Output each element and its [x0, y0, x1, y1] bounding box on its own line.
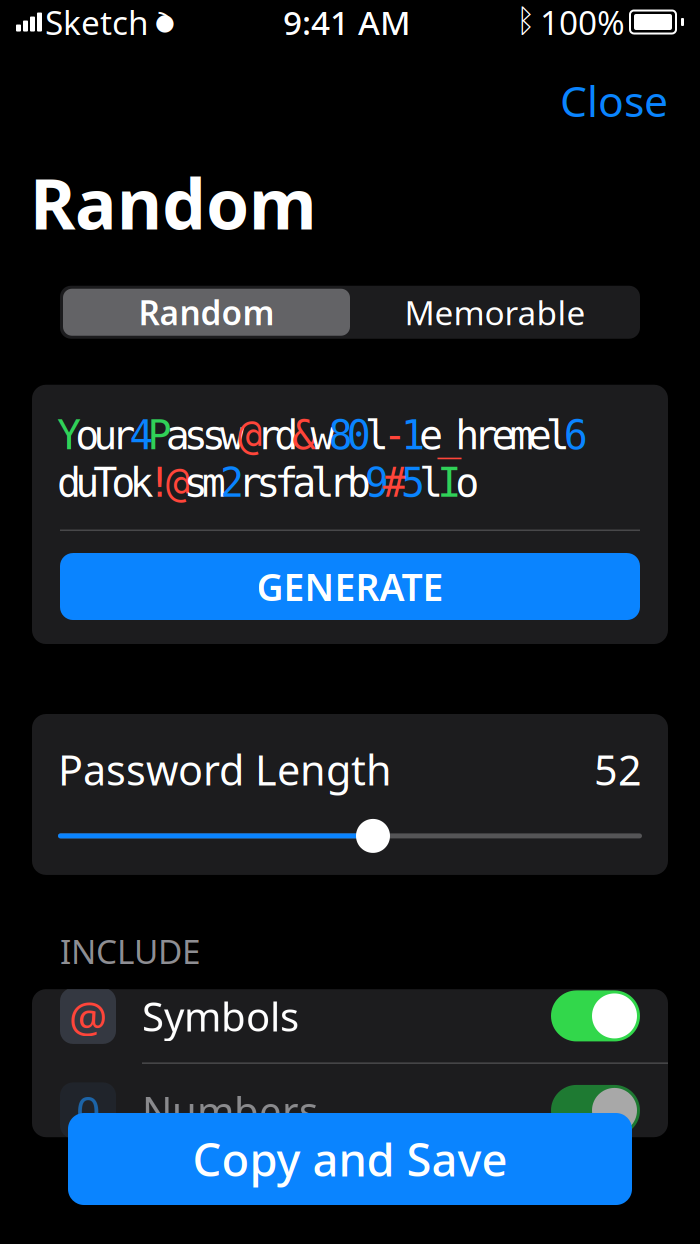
staticText: l	[365, 413, 389, 458]
staticText: 6	[564, 413, 588, 458]
staticText: GENERATE	[256, 562, 443, 611]
staticText: h	[455, 413, 479, 458]
staticText: Close	[560, 72, 668, 129]
staticText: r	[473, 413, 497, 458]
staticText: r	[256, 413, 280, 458]
staticText: 100%	[540, 0, 625, 44]
staticText: r	[238, 460, 262, 505]
staticText: Memorable	[404, 290, 585, 334]
staticText: a	[166, 413, 190, 458]
button[interactable]: Copy and Save	[0, 1113, 700, 1205]
button[interactable]: 0	[32, 1064, 668, 1157]
staticText: -	[383, 413, 407, 458]
staticText: Y	[57, 413, 81, 458]
staticText: o	[111, 460, 135, 505]
staticText: 8	[329, 413, 353, 458]
staticText: ᛒ	[516, 6, 535, 38]
staticText: 52	[594, 742, 642, 797]
staticText: w	[220, 413, 244, 458]
staticText: @	[238, 413, 262, 458]
staticText: o	[455, 460, 479, 505]
staticText: 4	[129, 413, 153, 458]
staticText: Random	[138, 290, 274, 334]
staticText: !	[148, 460, 172, 505]
staticText: k	[129, 460, 153, 505]
staticText: s	[256, 460, 280, 505]
staticText: @	[166, 460, 190, 505]
staticText: l	[419, 460, 443, 505]
staticText: e	[419, 413, 443, 458]
button[interactable]: GENERATE	[32, 531, 668, 644]
button[interactable]: Random	[60, 286, 350, 339]
staticText: P	[148, 413, 172, 458]
staticText: d	[274, 413, 298, 458]
staticText: r	[329, 460, 353, 505]
staticText: u	[93, 413, 117, 458]
staticText: m	[510, 413, 534, 458]
staticText: _	[437, 413, 461, 458]
staticText: o	[75, 413, 99, 458]
staticText: Symbols	[142, 989, 299, 1042]
staticText: 2	[220, 460, 244, 505]
staticText: 0	[347, 413, 371, 458]
button[interactable]: Memorable	[350, 286, 640, 339]
staticText: @	[69, 988, 107, 1044]
staticText: 5	[401, 460, 425, 505]
button[interactable]: @	[32, 969, 668, 1062]
staticText: 1	[401, 413, 425, 458]
staticText: ◝	[158, 2, 171, 42]
staticText: a	[292, 460, 316, 505]
staticText: 9	[365, 460, 389, 505]
staticText: f	[274, 460, 298, 505]
staticText: l	[546, 413, 570, 458]
staticText: s	[184, 460, 208, 505]
staticText: s	[202, 413, 226, 458]
staticText: r	[111, 413, 135, 458]
staticText: T	[93, 460, 117, 505]
staticText: u	[75, 460, 99, 505]
staticText: l	[310, 460, 334, 505]
staticText: Password Length	[58, 742, 392, 797]
staticText: ●	[155, 9, 175, 35]
staticText: d	[57, 460, 81, 505]
staticText: &	[292, 413, 316, 458]
staticText: 0	[76, 1082, 100, 1139]
staticText: #	[383, 460, 407, 505]
staticText: Sketch	[45, 0, 149, 44]
staticText: s	[184, 413, 208, 458]
staticText: w	[310, 413, 334, 458]
staticText: INCLUDE	[60, 929, 201, 973]
staticText: I	[437, 460, 461, 505]
staticText: Copy and Save	[192, 1129, 507, 1189]
staticText: e	[528, 413, 552, 458]
staticText: Random	[30, 157, 317, 249]
staticText: b	[347, 460, 371, 505]
staticText: m	[202, 460, 226, 505]
staticText: e	[491, 413, 515, 458]
button[interactable]: Close	[542, 62, 686, 139]
staticText: 9:41 AM	[283, 0, 411, 44]
staticText: Numbers	[142, 1084, 318, 1137]
